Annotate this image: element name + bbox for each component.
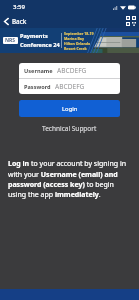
staticText: 3:59	[13, 3, 25, 11]
staticText: Resort Creek	[64, 46, 87, 51]
staticText: Login	[62, 105, 78, 113]
staticText: Conference 24	[20, 41, 60, 49]
button[interactable]: Scan QR code	[122, 14, 139, 28]
staticText: Hilton Orlando	[64, 41, 91, 46]
staticText: Back	[12, 17, 27, 26]
staticText: Technical Support	[42, 124, 97, 133]
staticText: Log in to your account by signing in wit…	[8, 159, 133, 199]
staticText: NRS	[5, 37, 16, 44]
button[interactable]: Login	[19, 100, 120, 117]
button[interactable]: Password	[19, 79, 120, 94]
staticText: ABCDEFG	[57, 66, 87, 75]
button[interactable]: Username	[19, 63, 120, 78]
staticText: Payments	[20, 32, 48, 40]
staticText: Username	[24, 67, 53, 75]
staticText: Password	[24, 83, 51, 91]
staticText: ABCDEFG	[55, 82, 85, 91]
staticText: September 18-19	[64, 31, 94, 36]
staticText: Marina Bay	[64, 36, 84, 41]
button[interactable]: Back	[0, 15, 32, 28]
button[interactable]: Technical Support	[36, 122, 103, 135]
